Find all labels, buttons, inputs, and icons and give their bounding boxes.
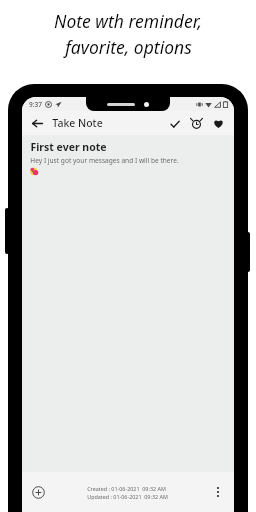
staticText: Updated : 01-06-2021 09:32 AM (87, 493, 168, 500)
button[interactable]: Add attachment (28, 482, 48, 502)
staticText: favorite, options (65, 35, 192, 59)
button[interactable]: Back (28, 114, 46, 132)
button[interactable]: Favorite (209, 114, 228, 133)
staticText: Note wth reminder, (54, 9, 202, 33)
button[interactable]: Set reminder (187, 114, 206, 133)
button[interactable]: Save note (165, 114, 184, 133)
staticText: Take Note (52, 116, 103, 130)
staticText: 9:37 (29, 100, 42, 109)
button[interactable]: More options (208, 482, 228, 502)
staticText: Created : 01-06-2021 09:32 AM (87, 485, 166, 492)
staticText: Hey I just got your messages and I will … (30, 156, 179, 165)
staticText: First ever note (30, 140, 107, 154)
